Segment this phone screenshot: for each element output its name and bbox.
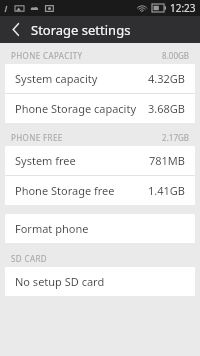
staticText: Phone Storage free xyxy=(15,183,115,198)
staticText: System capacity xyxy=(15,71,98,86)
staticText: PHONE CAPACITY xyxy=(11,50,83,61)
staticText: Phone Storage capacity xyxy=(15,101,137,116)
staticText: PHONE FREE xyxy=(11,132,63,143)
staticText: Format phone xyxy=(15,221,89,236)
staticText: 12:23 xyxy=(170,1,196,15)
button[interactable]: Phone Storage capacity xyxy=(5,94,195,123)
staticText: Storage settings xyxy=(31,21,131,39)
staticText: 8.00GB xyxy=(162,50,189,61)
button[interactable]: Phone Storage free xyxy=(5,176,195,205)
staticText: SD CARD xyxy=(11,253,48,264)
button[interactable]: No setup SD card xyxy=(5,267,195,296)
staticText: 781MB xyxy=(148,153,185,168)
staticText: System free xyxy=(15,153,76,168)
staticText: 2.17GB xyxy=(162,132,189,143)
staticText: No setup SD card xyxy=(15,274,105,289)
button[interactable]: Format phone xyxy=(5,214,195,243)
staticText: 3.68GB xyxy=(148,101,185,116)
button[interactable]: System capacity xyxy=(5,64,195,93)
staticText: 4.32GB xyxy=(148,71,185,86)
button[interactable]: System free xyxy=(5,146,195,175)
staticText: 1.41GB xyxy=(148,183,185,198)
button[interactable]: Back xyxy=(0,16,31,43)
